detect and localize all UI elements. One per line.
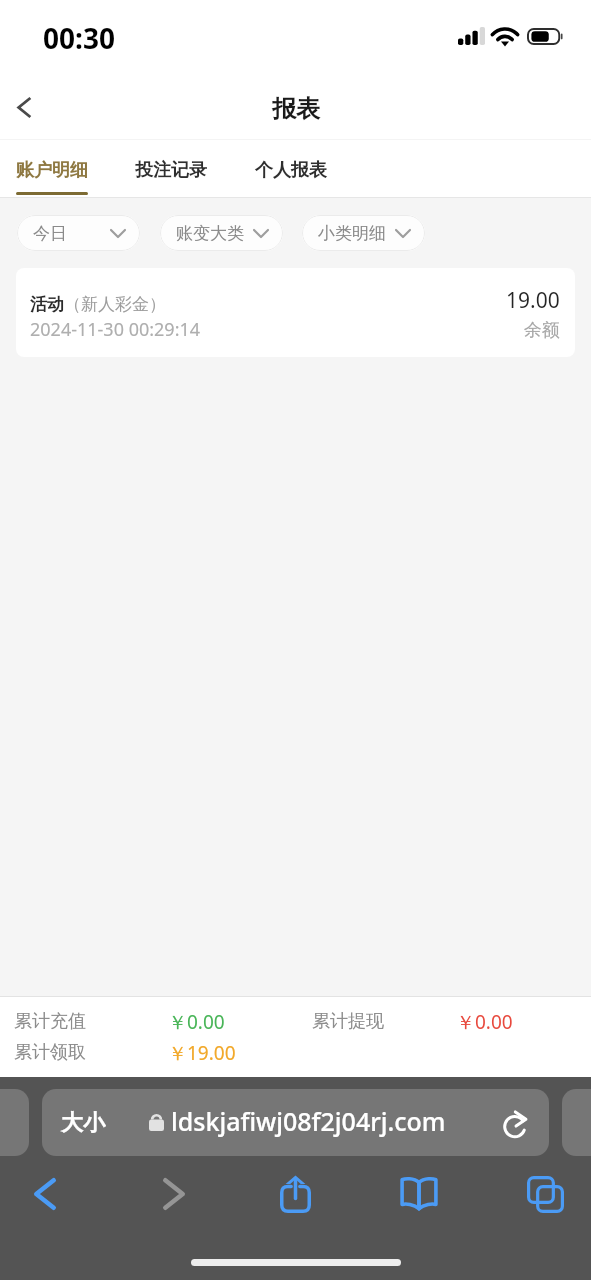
button[interactable]: 账变大类 (160, 215, 283, 251)
staticText: 累计领取 (14, 1041, 86, 1064)
button[interactable]: 投注记录 (135, 140, 207, 198)
button[interactable]: Forward (148, 1165, 200, 1223)
staticText: 报表 (272, 94, 320, 124)
staticText: ldskjafiwj08f2j04rj.com (171, 1104, 446, 1138)
staticText: 累计提现 (312, 1010, 384, 1033)
button[interactable]: 活动（新人彩金） (16, 268, 575, 357)
button[interactable]: 小类明细 (302, 215, 425, 251)
staticText: 小类明细 (318, 223, 386, 244)
staticText: 00:30 (43, 19, 115, 57)
staticText: 活动（新人彩金） (30, 294, 166, 315)
staticText: 2024-11-30 00:29:14 (30, 317, 201, 342)
button[interactable]: Back (19, 1165, 71, 1223)
staticText: 19.00 (506, 286, 560, 315)
button[interactable]: 账户明细 (16, 140, 88, 198)
staticText: 余额 (524, 319, 560, 342)
staticText: 大小 (61, 1109, 105, 1137)
button[interactable]: Bookmarks (393, 1165, 445, 1223)
button[interactable]: 大小 (42, 1089, 549, 1156)
staticText: 账户明细 (16, 159, 88, 182)
staticText: 投注记录 (135, 159, 207, 182)
button[interactable]: Reload (490, 1098, 540, 1148)
staticText: 累计充值 (14, 1010, 86, 1033)
button[interactable]: Share (269, 1165, 321, 1223)
button[interactable]: Back (0, 79, 49, 135)
button[interactable]: 今日 (17, 215, 140, 251)
button[interactable]: 个人报表 (255, 140, 327, 198)
button[interactable]: Tabs (519, 1165, 571, 1223)
staticText: 今日 (33, 223, 67, 244)
staticText: ￥19.00 (168, 1040, 236, 1066)
staticText: 账变大类 (176, 223, 244, 244)
staticText: ￥0.00 (168, 1009, 225, 1035)
staticText: ￥0.00 (456, 1009, 513, 1035)
staticText: 个人报表 (255, 159, 327, 182)
